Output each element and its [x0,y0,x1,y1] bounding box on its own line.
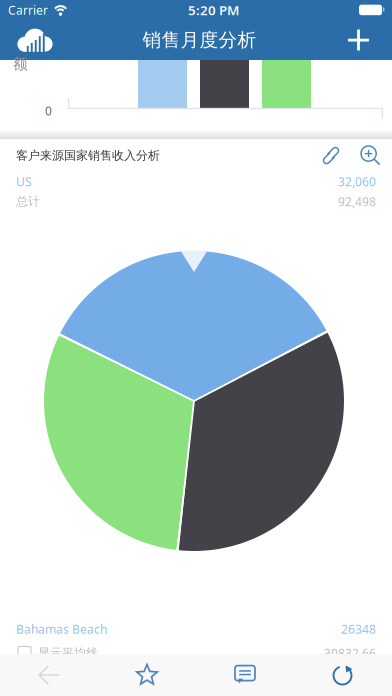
staticText: 客户来源国家销售收入分析 [16,148,160,163]
button[interactable]: Add [334,20,392,60]
button[interactable]: Comments [196,654,294,696]
staticText: 92,498 [338,193,376,209]
staticText: 总计 [16,194,40,209]
button[interactable]: Home [0,20,65,60]
button[interactable]: Zoom in [358,143,383,168]
button[interactable]: Refresh [294,654,392,696]
staticText: 显示平均线 [38,646,98,660]
staticText: Carrier [8,2,48,18]
button[interactable]: Link [316,143,346,167]
staticText: 32,060 [338,173,376,189]
staticText: 5:20 PM [188,1,239,19]
staticText: 销售月度分析 [142,28,256,51]
staticText: 0 [45,103,52,119]
button[interactable]: Back [0,654,98,696]
button[interactable]: Favorite [98,654,196,696]
staticText: 30832.66 [324,645,376,661]
staticText: US [16,173,32,189]
staticText: 额 [13,55,28,73]
staticText: Bahamas Beach [16,621,107,637]
staticText: 26348 [341,621,376,637]
